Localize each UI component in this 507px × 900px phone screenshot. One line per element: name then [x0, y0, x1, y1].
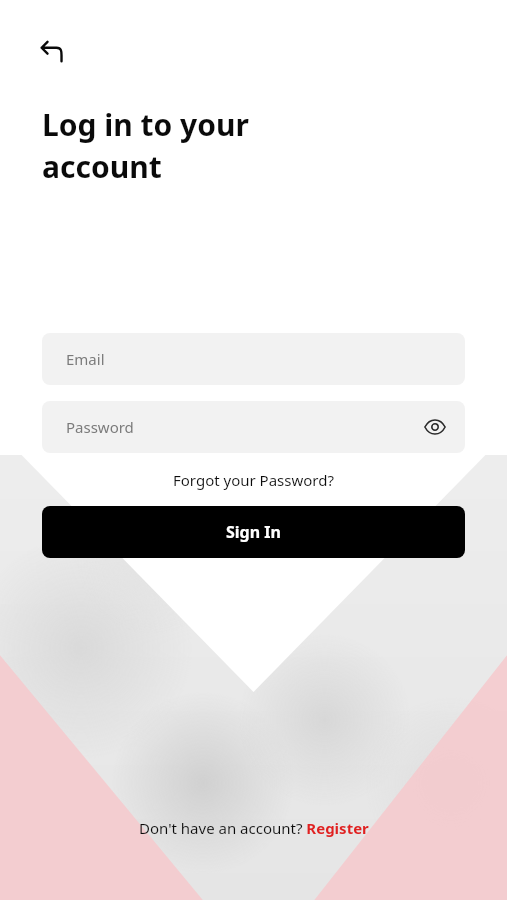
button[interactable]: Email: [42, 333, 465, 385]
button[interactable]: Don't have an account? Register: [0, 818, 507, 900]
staticText: Log in to your account: [42, 104, 249, 187]
button[interactable]: Back: [30, 28, 74, 72]
staticText: Sign In: [226, 521, 281, 543]
button[interactable]: Forgot your Password?: [0, 470, 507, 490]
button[interactable]: Sign In: [42, 506, 465, 558]
button[interactable]: Password: [42, 401, 465, 453]
staticText: Don't have an account? Register: [139, 818, 369, 838]
staticText: Email: [66, 349, 105, 369]
staticText: Password: [66, 417, 134, 437]
staticText: Forgot your Password?: [173, 470, 334, 490]
button[interactable]: Show password: [417, 409, 453, 445]
